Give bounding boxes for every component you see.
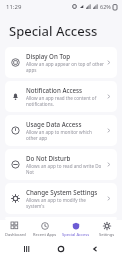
staticText: Display On Top	[26, 52, 71, 60]
staticText: Allows an app to read and write Do Not D…	[26, 163, 104, 175]
button[interactable]: Recents	[20, 242, 34, 256]
staticText: Special Access	[9, 22, 98, 40]
staticText: Do Not Disturb	[26, 154, 71, 162]
button[interactable]: Settings	[91, 220, 122, 242]
button[interactable]: Display On Top	[5, 47, 117, 78]
button[interactable]: Special Access	[60, 220, 91, 242]
staticText: Settings	[99, 232, 115, 237]
button[interactable]: Do Not Disturb	[5, 149, 117, 180]
button[interactable]: Change System Settings	[5, 183, 117, 214]
staticText: Dashboard	[5, 232, 26, 237]
button[interactable]: Recent Apps	[30, 220, 60, 242]
staticText: Allow an app to monitor which other app …	[26, 129, 104, 141]
staticText: Usage Data Access	[26, 120, 82, 128]
button[interactable]: Dashboard	[0, 220, 30, 242]
button[interactable]: Back	[88, 242, 102, 256]
staticText: Allow an app appear on top of other apps…	[26, 61, 104, 73]
staticText: Special Access	[62, 232, 90, 237]
staticText: Allow an app read the content of notific…	[26, 95, 97, 107]
staticText: 62%	[100, 3, 111, 10]
staticText: Recent Apps	[33, 232, 57, 237]
staticText: Notification Access	[26, 86, 83, 94]
staticText: Allows an app to modify the system's set…	[26, 197, 104, 209]
button[interactable]: Usage Data Access	[5, 115, 117, 146]
button[interactable]: Notification Access	[5, 81, 117, 112]
staticText: 11:29	[6, 3, 22, 11]
staticText: Change System Settings	[26, 188, 98, 196]
button[interactable]: Home	[54, 242, 68, 256]
